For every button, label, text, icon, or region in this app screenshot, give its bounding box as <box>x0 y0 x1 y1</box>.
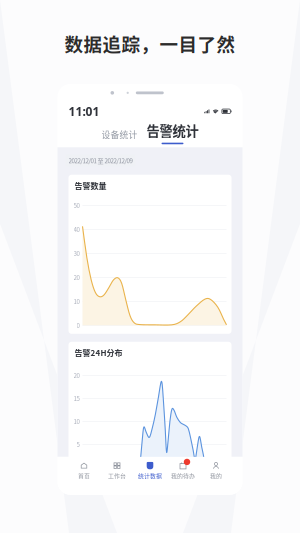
staticText: 2022/12/01 至 2022/12/09 <box>68 156 132 165</box>
staticText: 0 <box>76 321 79 330</box>
staticText: 20 <box>73 371 79 380</box>
staticText: 告警统计 <box>146 121 198 140</box>
staticText: 11:01 <box>68 103 99 119</box>
button[interactable]: 统计数据 <box>133 457 166 482</box>
staticText: 告警数量 <box>74 180 106 191</box>
staticText: 首页 <box>78 471 90 480</box>
staticText: 工作台 <box>108 471 126 480</box>
staticText: 告警24H分布 <box>74 347 122 358</box>
button[interactable]: 我的待办 <box>166 457 199 482</box>
staticText: 5 <box>76 440 79 449</box>
staticText: 30 <box>73 249 79 258</box>
button[interactable]: 告警统计 <box>146 121 198 144</box>
staticText: 20 <box>73 273 79 282</box>
button[interactable]: 我的 <box>199 457 232 482</box>
button[interactable]: 首页 <box>67 457 100 482</box>
staticText: 我的待办 <box>171 471 195 480</box>
staticText: 10 <box>73 417 79 426</box>
staticText: 10 <box>73 297 79 306</box>
staticText: 50 <box>73 201 79 210</box>
staticText: 15 <box>73 394 79 403</box>
staticText: 我的 <box>210 471 222 480</box>
button[interactable]: 工作台 <box>100 457 133 482</box>
staticText: 数据追踪，一目了然 <box>64 30 235 57</box>
staticText: 40 <box>73 225 79 234</box>
button[interactable]: 设备统计 <box>101 128 137 144</box>
staticText: 统计数据 <box>138 471 162 480</box>
staticText: 设备统计 <box>101 128 137 141</box>
